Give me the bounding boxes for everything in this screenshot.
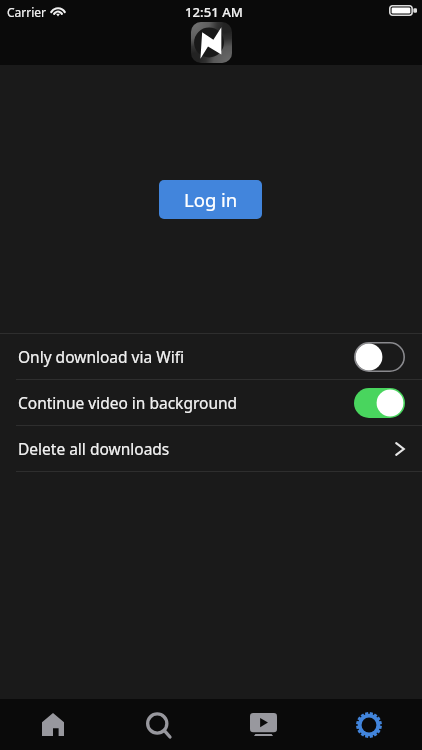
button[interactable]: Off <box>354 342 405 372</box>
staticText: Carrier <box>7 4 47 20</box>
button[interactable]: Log in <box>159 180 262 219</box>
button[interactable]: Delete all downloads <box>0 426 422 471</box>
staticText: Log in <box>184 187 238 212</box>
button[interactable]: Videos <box>210 699 316 750</box>
staticText: Only download via Wifi <box>18 346 184 367</box>
button[interactable]: Only download via Wifi <box>0 334 422 379</box>
button[interactable]: Continue video in background <box>0 380 422 425</box>
button[interactable]: Search <box>105 699 210 750</box>
staticText: Continue video in background <box>18 392 238 413</box>
button[interactable]: On <box>354 388 405 418</box>
staticText: 12:51 AM <box>185 3 243 21</box>
button[interactable]: Home <box>0 699 105 750</box>
button[interactable]: Settings <box>316 699 422 750</box>
staticText: Delete all downloads <box>18 438 170 459</box>
